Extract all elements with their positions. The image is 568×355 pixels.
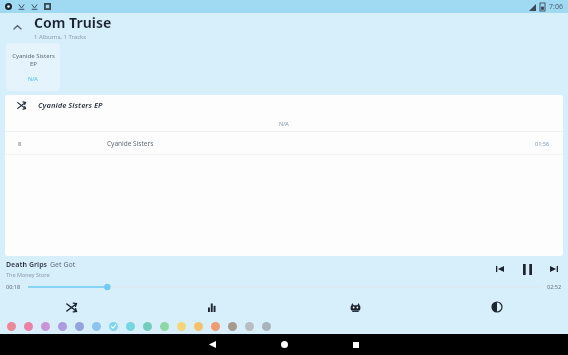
button[interactable]: Theme color 8 bbox=[124, 320, 136, 332]
button[interactable]: Theme color 4 bbox=[56, 320, 68, 332]
staticText: Get Got bbox=[50, 260, 76, 270]
button[interactable]: Collapse bbox=[8, 18, 26, 36]
staticText: 02:52 bbox=[547, 283, 562, 290]
staticText: 01:56 bbox=[535, 140, 550, 147]
button[interactable]: Cyanide Sisters EP bbox=[6, 43, 60, 91]
staticText: Death Grips bbox=[6, 260, 48, 270]
button[interactable]: Next track bbox=[546, 261, 562, 277]
staticText: 7:06 bbox=[549, 2, 563, 12]
button[interactable]: Theme color 13 bbox=[209, 320, 221, 332]
button[interactable]: Seek bar bbox=[28, 281, 540, 293]
staticText: Cyanide Sisters EP bbox=[38, 100, 103, 110]
staticText: 1 Albums, 1 Tracks bbox=[34, 33, 87, 41]
button[interactable]: Theme color 5 bbox=[73, 320, 85, 332]
button[interactable]: Theme color 1 bbox=[5, 320, 17, 332]
button[interactable]: Recent apps bbox=[341, 334, 371, 355]
button[interactable]: Shuffle bbox=[0, 296, 142, 318]
button[interactable]: Shuffle album bbox=[13, 97, 29, 113]
button[interactable]: Theme color 3 bbox=[39, 320, 51, 332]
button[interactable]: Theme color 12 bbox=[192, 320, 204, 332]
button[interactable]: Pause bbox=[518, 260, 536, 278]
button[interactable]: Back bbox=[197, 334, 227, 355]
button[interactable]: Theme color 16 bbox=[260, 320, 272, 332]
staticText: Cyanide Sisters EP bbox=[12, 52, 55, 68]
button[interactable]: Home bbox=[269, 334, 299, 355]
button[interactable]: Theme color 6 bbox=[90, 320, 102, 332]
button[interactable]: Theme color 14 bbox=[226, 320, 238, 332]
button[interactable]: Theme color 2 bbox=[22, 320, 34, 332]
button[interactable]: Previous track bbox=[492, 261, 508, 277]
button[interactable]: Equalizer bbox=[142, 296, 284, 318]
button[interactable]: Source code bbox=[284, 296, 426, 318]
staticText: 8 bbox=[18, 140, 22, 147]
button[interactable]: Theme color 11 bbox=[175, 320, 187, 332]
button[interactable]: Theme color 10 bbox=[158, 320, 170, 332]
staticText: N/A bbox=[279, 120, 289, 127]
staticText: Com Truise bbox=[34, 13, 112, 32]
button[interactable]: Theme color 7 bbox=[107, 320, 119, 332]
button[interactable]: 8 bbox=[5, 132, 563, 154]
staticText: 00:18 bbox=[6, 283, 21, 290]
staticText: Cyanide Sisters bbox=[107, 139, 154, 148]
staticText: The Money Store bbox=[6, 271, 50, 278]
staticText: N/A bbox=[28, 75, 38, 82]
button[interactable]: Theme color 15 bbox=[243, 320, 255, 332]
button[interactable]: Theme color 9 bbox=[141, 320, 153, 332]
button[interactable]: Toggle theme bbox=[426, 296, 568, 318]
